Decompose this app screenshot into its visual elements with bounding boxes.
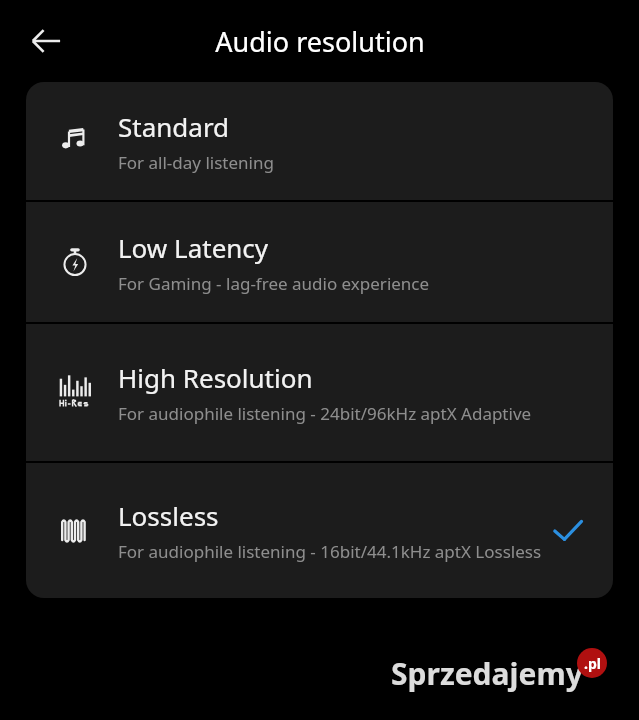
button[interactable]: Low Latency bbox=[26, 202, 613, 322]
button[interactable]: High Resolution bbox=[26, 324, 613, 461]
staticText: Audio resolution bbox=[215, 23, 425, 60]
staticText: High Resolution bbox=[118, 360, 313, 395]
staticText: Standard bbox=[118, 109, 230, 144]
button[interactable]: Standard bbox=[26, 82, 613, 200]
staticText: .pl bbox=[584, 654, 601, 673]
staticText: For Gaming - lag-free audio experience bbox=[118, 272, 430, 295]
button[interactable]: Back bbox=[18, 13, 74, 69]
staticText: Lossless bbox=[118, 498, 219, 533]
staticText: For all-day listening bbox=[118, 151, 274, 174]
staticText: For audiophile listening - 16bit/44.1kHz… bbox=[118, 540, 542, 563]
staticText: For audiophile listening - 24bit/96kHz a… bbox=[118, 402, 532, 425]
staticText: Low Latency bbox=[118, 230, 269, 265]
staticText: Sprzedajemy bbox=[391, 653, 583, 694]
button[interactable]: Lossless bbox=[26, 463, 613, 598]
